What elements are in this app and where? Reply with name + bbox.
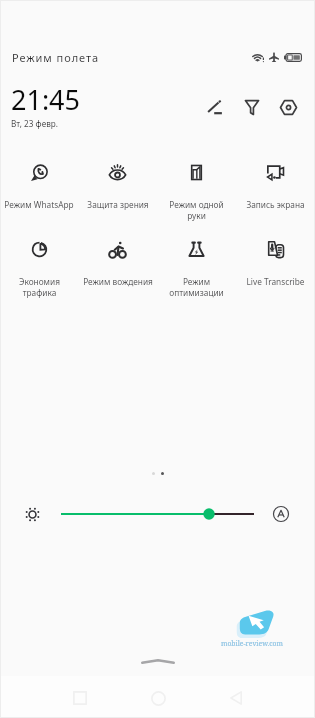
staticText: Режим WhatsApp bbox=[4, 199, 74, 210]
staticText: 21:45 bbox=[11, 81, 81, 118]
button[interactable]: Защита зрения bbox=[78, 164, 157, 210]
staticText: Режим одной руки bbox=[169, 199, 224, 221]
button[interactable]: Режим вождения bbox=[78, 241, 157, 287]
button[interactable]: Filter bbox=[233, 89, 270, 125]
staticText: Вт, 23 февр. bbox=[11, 118, 58, 129]
staticText: Экономия трафика bbox=[19, 276, 60, 298]
button[interactable]: Edit bbox=[196, 89, 233, 125]
button[interactable]: Режим одной руки bbox=[157, 164, 236, 221]
button[interactable]: Запись экрана bbox=[236, 164, 315, 210]
staticText: Защита зрения bbox=[87, 199, 149, 210]
staticText: Режим вождения bbox=[83, 276, 153, 287]
button[interactable]: Auto brightness bbox=[273, 506, 289, 522]
staticText: Live Transcribe bbox=[246, 276, 305, 287]
button[interactable]: Settings bbox=[270, 89, 307, 125]
button[interactable]: Live Transcribe bbox=[236, 241, 315, 287]
button[interactable]: Режим WhatsApp bbox=[0, 164, 78, 210]
button[interactable]: Экономия трафика bbox=[0, 241, 78, 298]
staticText: mobile-review.com bbox=[221, 639, 283, 648]
staticText: Запись экрана bbox=[246, 199, 305, 210]
button[interactable]: Режим оптимизации bbox=[157, 241, 236, 298]
staticText: Режим оптимизации bbox=[169, 276, 224, 298]
button[interactable]: Brightness bbox=[61, 503, 254, 525]
staticText: Режим полета bbox=[12, 50, 100, 65]
